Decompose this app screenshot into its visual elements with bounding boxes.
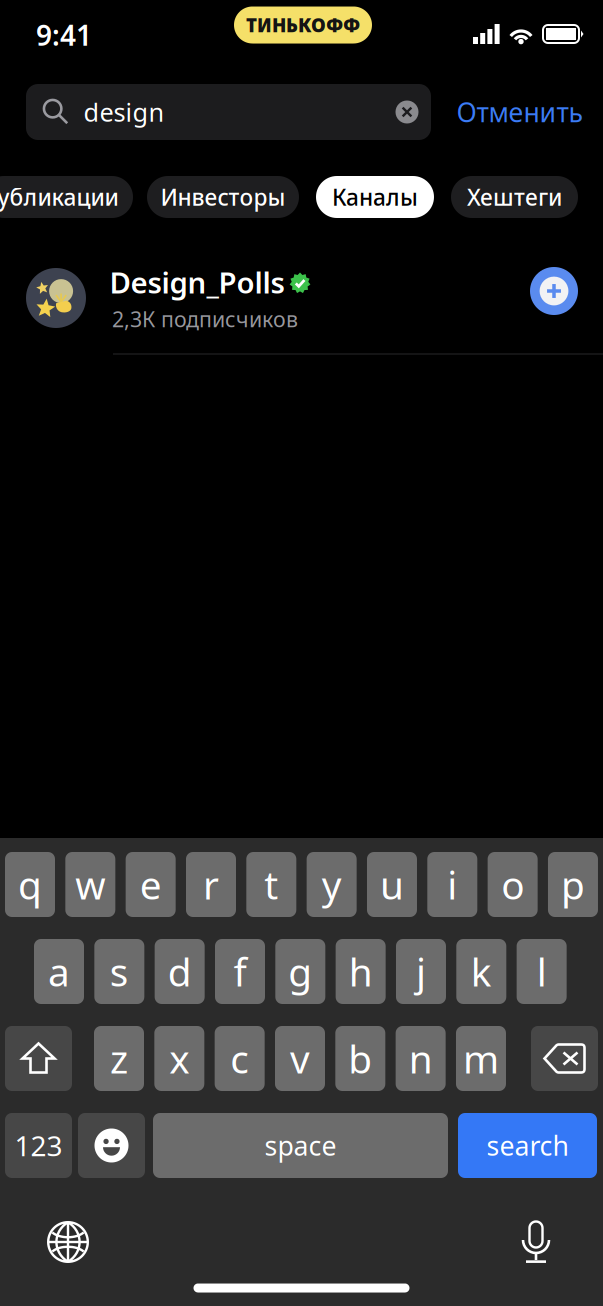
button[interactable]: v — [275, 1026, 325, 1091]
staticText: h — [349, 946, 373, 997]
button[interactable]: Emoji keyboard — [78, 1113, 145, 1178]
staticText: search — [486, 1128, 568, 1163]
button[interactable]: Инвесторы — [147, 176, 299, 218]
staticText: c — [230, 1033, 249, 1084]
staticText: p — [561, 859, 585, 910]
button[interactable]: k — [456, 939, 506, 1004]
button[interactable]: l — [517, 939, 567, 1004]
staticText: 9:41 — [36, 16, 92, 54]
staticText: убликации — [0, 182, 118, 212]
staticText: o — [501, 859, 524, 910]
staticText: Каналы — [332, 182, 418, 212]
staticText: f — [233, 946, 246, 997]
button[interactable]: 123 — [5, 1113, 72, 1178]
button[interactable]: design — [26, 84, 431, 140]
button[interactable]: убликации — [0, 176, 133, 218]
button[interactable]: j — [396, 939, 446, 1004]
button[interactable]: b — [335, 1026, 385, 1091]
button[interactable]: i — [427, 852, 477, 917]
button[interactable]: r — [186, 852, 236, 917]
staticText: m — [463, 1033, 499, 1084]
button[interactable]: search — [458, 1113, 597, 1178]
button[interactable]: Каналы — [316, 176, 434, 218]
staticText: w — [75, 859, 105, 910]
button[interactable]: t — [246, 852, 296, 917]
button[interactable]: h — [336, 939, 386, 1004]
button[interactable]: g — [275, 939, 325, 1004]
button[interactable]: u — [367, 852, 417, 917]
staticText: Отменить — [456, 94, 583, 130]
staticText: i — [447, 859, 457, 910]
staticText: q — [18, 859, 42, 910]
button[interactable]: q — [5, 852, 55, 917]
button[interactable]: o — [488, 852, 538, 917]
button[interactable]: n — [396, 1026, 446, 1091]
staticText: s — [110, 946, 129, 997]
staticText: design — [83, 95, 164, 129]
button[interactable]: Shift — [5, 1026, 72, 1091]
staticText: ТИНЬКОФФ — [246, 13, 360, 37]
staticText: Инвесторы — [160, 182, 285, 212]
staticText: b — [348, 1033, 372, 1084]
button[interactable]: Clear text — [385, 90, 429, 134]
button[interactable]: Dictation — [505, 1211, 567, 1273]
staticText: d — [168, 946, 192, 997]
button[interactable]: space — [153, 1113, 448, 1178]
button[interactable]: Design_Polls — [0, 252, 603, 344]
staticText: j — [416, 946, 426, 997]
button[interactable]: w — [65, 852, 115, 917]
button[interactable]: Next keyboard — [37, 1211, 99, 1273]
button[interactable]: Delete — [531, 1026, 598, 1091]
staticText: z — [110, 1033, 128, 1084]
staticText: 123 — [14, 1127, 62, 1164]
staticText: u — [380, 859, 404, 910]
button[interactable]: Хештеги — [451, 176, 578, 218]
staticText: Design_Polls — [109, 262, 284, 301]
button[interactable]: a — [34, 939, 84, 1004]
staticText: n — [409, 1033, 433, 1084]
staticText: a — [48, 946, 70, 997]
staticText: r — [203, 859, 219, 910]
staticText: y — [322, 859, 342, 910]
button[interactable]: c — [215, 1026, 265, 1091]
staticText: k — [471, 946, 492, 997]
staticText: e — [140, 859, 162, 910]
staticText: v — [290, 1033, 310, 1084]
button[interactable]: Отменить — [445, 84, 595, 140]
staticText: t — [264, 859, 278, 910]
staticText: space — [264, 1128, 336, 1163]
button[interactable]: y — [307, 852, 357, 917]
button[interactable]: s — [94, 939, 144, 1004]
button[interactable]: f — [215, 939, 265, 1004]
staticText: 2,3К подписчиков — [112, 305, 298, 333]
staticText: g — [288, 946, 312, 997]
button[interactable]: x — [154, 1026, 204, 1091]
button[interactable]: p — [548, 852, 598, 917]
button[interactable]: m — [456, 1026, 506, 1091]
staticText: x — [169, 1033, 189, 1084]
button[interactable]: z — [94, 1026, 144, 1091]
button[interactable]: e — [126, 852, 176, 917]
staticText: l — [537, 946, 547, 997]
button[interactable]: d — [155, 939, 205, 1004]
staticText: Хештеги — [467, 182, 562, 212]
